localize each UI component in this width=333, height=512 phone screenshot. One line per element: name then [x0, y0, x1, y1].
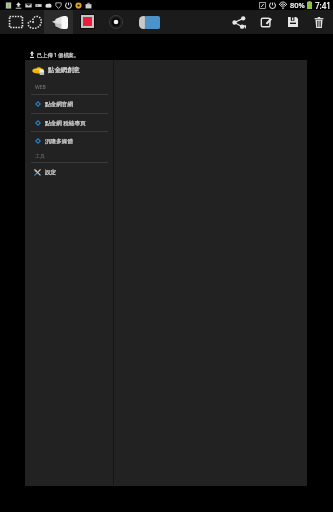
button[interactable]: Megaphone tool — [44, 10, 73, 34]
button[interactable]: Eraser — [139, 16, 160, 29]
button[interactable]: Delete — [314, 17, 324, 28]
button[interactable]: 汎隆多媒體 — [25, 132, 113, 150]
button[interactable]: Brush size — [109, 15, 123, 29]
staticText: 已上傳 1 個檔案。 — [37, 51, 79, 58]
button[interactable]: 設定 — [25, 163, 113, 182]
button[interactable]: Edit — [261, 17, 272, 27]
staticText: 設定 — [45, 169, 57, 176]
staticText: WEB — [35, 84, 46, 91]
button[interactable]: 點金網創意 — [25, 60, 113, 80]
staticText: 80% — [290, 0, 305, 10]
staticText: 點金網 粉絲專頁 — [45, 119, 86, 127]
staticText: 點金網官網 — [45, 101, 73, 108]
button[interactable]: Save — [288, 17, 298, 27]
button[interactable]: 已上傳 1 個檔案。 — [30, 49, 79, 59]
staticText: 7:41 — [315, 0, 331, 10]
staticText: 汎隆多媒體 — [45, 138, 73, 145]
button[interactable]: Select — [9, 16, 23, 28]
button[interactable]: 點金網官網 — [25, 95, 113, 113]
button[interactable]: Share — [232, 16, 246, 29]
button[interactable]: 點金網 粉絲專頁 — [25, 114, 113, 131]
button[interactable]: Lasso — [27, 15, 42, 29]
staticText: 點金網創意 — [48, 66, 80, 74]
staticText: 工具 — [35, 153, 45, 159]
